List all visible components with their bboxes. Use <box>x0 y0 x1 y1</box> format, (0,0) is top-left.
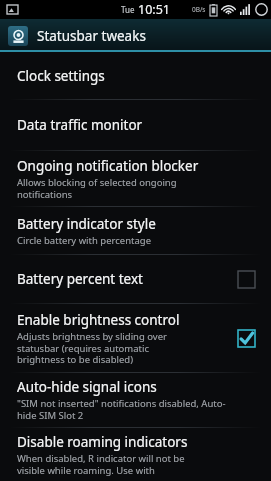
staticText: Data traffic monitor <box>17 116 143 134</box>
staticText: Enable brightness control <box>17 311 180 329</box>
staticText: Allows blocking of selected ongoing noti… <box>17 176 177 201</box>
button[interactable]: Clock settings <box>0 52 271 99</box>
staticText: Statusbar tweaks <box>37 27 146 45</box>
staticText: Circle battery with percentage <box>17 234 152 247</box>
button[interactable]: Disable roaming indicators <box>0 428 271 481</box>
staticText: Auto-hide signal icons <box>17 378 157 396</box>
button[interactable]: Battery percent text <box>231 264 261 294</box>
staticText: Tue <box>121 4 135 15</box>
button[interactable]: Enable brightness control <box>0 304 271 372</box>
staticText: "SIM not inserted" notifications disable… <box>17 397 226 422</box>
button[interactable]: Battery percent text <box>0 255 271 303</box>
button[interactable]: Data traffic monitor <box>0 100 271 150</box>
button[interactable]: Enable brightness control <box>231 323 261 353</box>
button[interactable]: Auto-hide signal icons <box>0 373 271 427</box>
staticText: When disabled, R indicator will not be v… <box>17 452 185 477</box>
staticText: Adjusts brightness by sliding over statu… <box>17 330 167 366</box>
staticText: Battery percent text <box>17 270 143 288</box>
button[interactable]: Battery indicator style <box>0 207 271 254</box>
button[interactable]: Ongoing notification blocker <box>0 151 271 206</box>
staticText: Clock settings <box>17 67 105 85</box>
staticText: Battery indicator style <box>17 215 156 233</box>
staticText: Ongoing notification blocker <box>17 157 199 175</box>
staticText: 10:51 <box>138 1 170 18</box>
staticText: 0B/s <box>192 5 206 14</box>
staticText: Disable roaming indicators <box>17 433 188 451</box>
